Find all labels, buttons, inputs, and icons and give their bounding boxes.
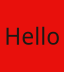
staticText: Hello (4, 21, 60, 51)
